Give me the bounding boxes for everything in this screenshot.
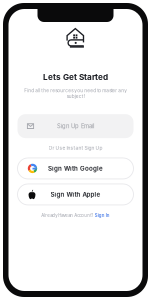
button[interactable]: Sign In bbox=[95, 213, 110, 218]
button[interactable]: Sign Up Email bbox=[17, 114, 133, 138]
staticText: Find all the resources you need to maste… bbox=[24, 88, 127, 99]
button[interactable]: Sign With Google bbox=[17, 158, 133, 179]
staticText: Lets Get Started bbox=[43, 72, 108, 82]
staticText: Already Have an Account? bbox=[41, 213, 93, 218]
staticText: Sign Up Email bbox=[57, 123, 94, 130]
staticText: Sign With Google bbox=[48, 165, 103, 172]
staticText: Sign With Apple bbox=[50, 191, 100, 198]
button[interactable]: Sign With Apple bbox=[17, 184, 133, 205]
staticText: Sign In bbox=[95, 213, 110, 218]
staticText: Or Use Instant Sign Up bbox=[48, 145, 102, 151]
